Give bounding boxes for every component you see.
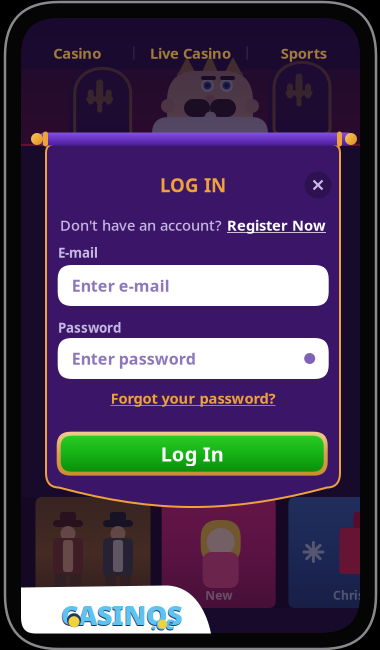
staticText: Forgot your password? [110,388,275,408]
staticText: Christmas [333,587,380,603]
staticText: .cc [150,612,173,635]
button[interactable]: Register Now [227,215,326,235]
staticText: Register Now [227,215,326,235]
button[interactable]: Sports [248,40,360,66]
staticText: .cc [151,611,174,634]
button[interactable]: Forgot your password? [46,390,340,406]
staticText: E-mail [58,244,98,261]
staticText: Sports [281,43,327,63]
button[interactable]: Log In [57,432,328,476]
staticText: Don't have an account? [60,215,222,235]
staticText: New [205,587,232,603]
button[interactable]: Show password [297,345,323,371]
staticText: CASINOS [60,598,181,633]
staticText: Log In [161,440,224,467]
staticText: Live Casino [150,43,231,63]
staticText: Password [58,319,121,336]
staticText: Casino [53,43,101,63]
button[interactable]: Close [301,168,335,202]
button[interactable]: Casino [21,40,133,66]
staticText: CASINOS [61,597,182,632]
staticText: Enter e-mail [72,275,170,296]
button[interactable]: Live Casino [134,40,247,66]
staticText: Enter password [72,348,196,369]
staticText: LOG IN [160,173,226,197]
